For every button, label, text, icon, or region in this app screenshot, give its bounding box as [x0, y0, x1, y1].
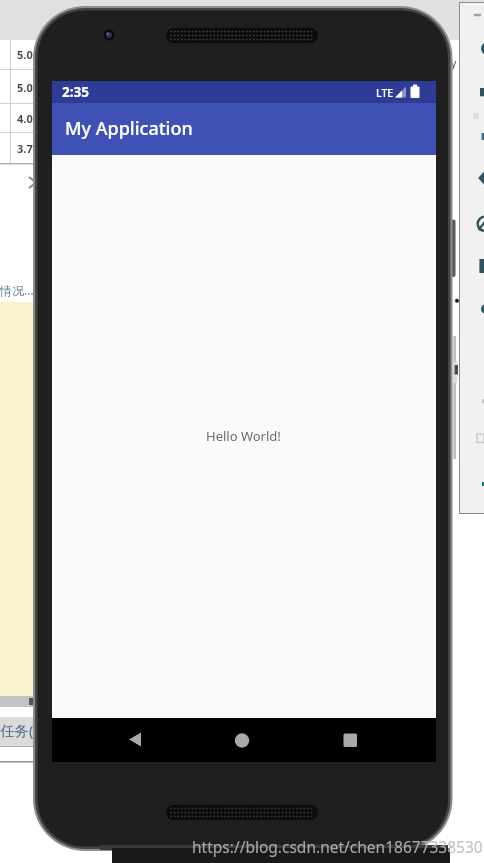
button[interactable] — [110, 718, 158, 762]
staticText: https://blog.csdn.net/chen18677338530 — [192, 836, 483, 857]
staticText: LTE — [376, 86, 394, 100]
staticText: 4.0 — [17, 111, 33, 126]
staticText: ity — [444, 55, 457, 70]
staticText: 任务(E — [0, 720, 42, 740]
staticText: 5.0 — [17, 47, 33, 62]
staticText: 情况... — [0, 282, 34, 298]
button[interactable] — [218, 718, 266, 762]
staticText: 5.0 — [17, 80, 33, 95]
button[interactable] — [326, 718, 374, 762]
staticText: 3.7 — [17, 141, 33, 156]
staticText: 2:35 — [62, 83, 89, 101]
staticText: Hello World! — [206, 427, 281, 445]
staticText: My Application — [65, 116, 193, 141]
